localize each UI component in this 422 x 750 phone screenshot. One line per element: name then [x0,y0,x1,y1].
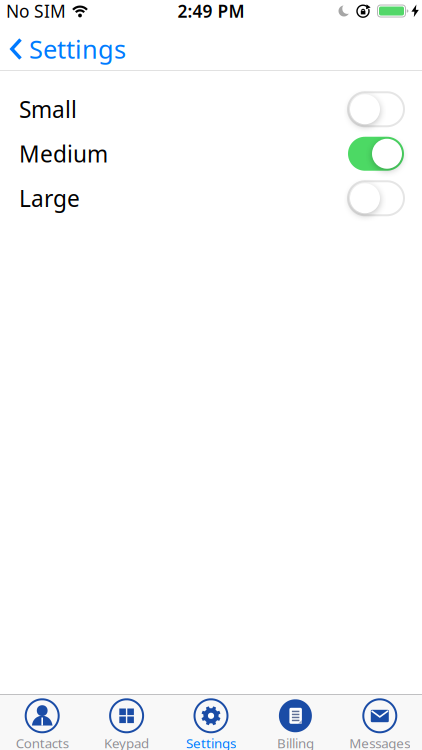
staticText: Contacts [16,734,69,750]
staticText: Small [19,94,77,124]
button[interactable]: Billing [253,695,338,750]
button[interactable]: Large [348,181,404,215]
staticText: Settings [29,32,126,66]
button[interactable]: Contacts [0,695,84,750]
button[interactable]: Medium [348,137,404,171]
staticText: Large [19,183,80,213]
staticText: 2:49 PM [177,0,244,22]
staticText: Messages [349,734,410,750]
button[interactable]: Settings [0,26,126,66]
staticText: Billing [277,734,314,750]
staticText: No SIM [6,0,66,22]
button[interactable]: Messages [338,695,422,750]
button[interactable]: Small [348,92,404,126]
staticText: Keypad [104,734,149,750]
button[interactable]: Keypad [84,695,169,750]
staticText: Medium [19,139,108,169]
button[interactable]: Settings [169,695,253,750]
staticText: Settings [186,734,236,750]
